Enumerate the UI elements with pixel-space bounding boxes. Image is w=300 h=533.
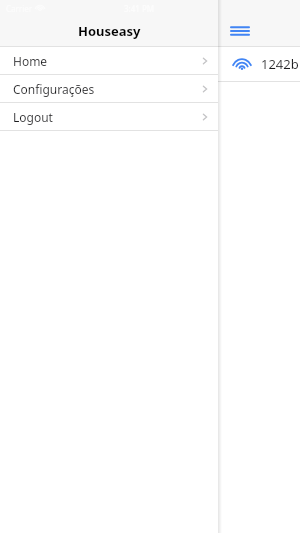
staticText: Home <box>13 53 48 69</box>
staticText: Houseasy <box>78 22 141 40</box>
staticText: Configurações <box>13 81 95 97</box>
button[interactable]: Logout <box>0 103 218 130</box>
button[interactable]: Configurações <box>0 75 218 102</box>
staticText: Logout <box>13 109 53 125</box>
button[interactable]: Menu <box>228 19 252 43</box>
staticText: 1242b6 <box>261 55 300 73</box>
button[interactable]: Home <box>0 47 218 74</box>
button[interactable]: 1242b6 <box>0 47 300 81</box>
